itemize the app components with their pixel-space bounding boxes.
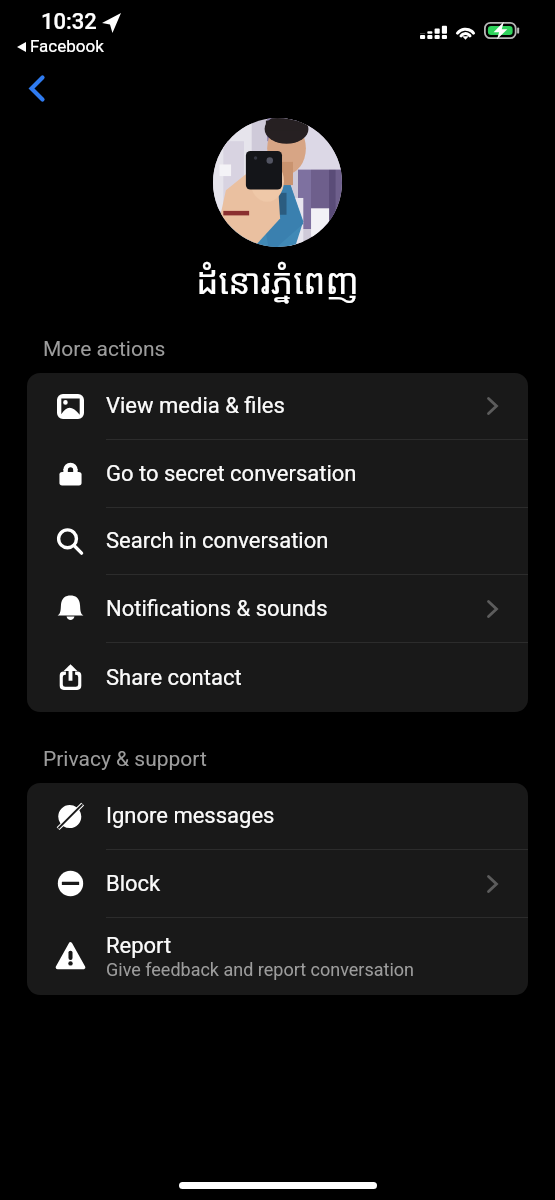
button[interactable]: Report xyxy=(27,918,528,995)
button[interactable]: Back xyxy=(9,63,65,114)
staticText: Privacy & support xyxy=(43,747,207,772)
staticText: Go to secret conversation xyxy=(106,461,357,487)
staticText: Share contact xyxy=(106,665,242,691)
staticText: ដំនោរភ្នំពេញ xyxy=(0,257,555,305)
button[interactable]: Ignore messages xyxy=(27,783,528,849)
staticText: Notifications & sounds xyxy=(106,596,328,622)
staticText: 10:32 xyxy=(41,9,97,35)
staticText: Give feedback and report conversation xyxy=(106,959,414,980)
button[interactable]: View media & files xyxy=(27,373,528,439)
staticText: More actions xyxy=(43,337,166,362)
staticText: Ignore messages xyxy=(106,803,275,829)
button[interactable]: Notifications & sounds xyxy=(27,575,528,642)
button[interactable]: Share contact xyxy=(27,643,528,712)
button[interactable]: Profile photo xyxy=(213,118,342,247)
staticText: Block xyxy=(106,871,161,897)
button[interactable]: Search in conversation xyxy=(27,508,528,574)
staticText: View media & files xyxy=(106,393,285,419)
button[interactable]: Go to secret conversation xyxy=(27,440,528,507)
staticText: Facebook xyxy=(30,36,104,56)
staticText: Search in conversation xyxy=(106,528,329,554)
staticText: Report xyxy=(106,933,172,959)
button[interactable]: Block xyxy=(27,850,528,917)
